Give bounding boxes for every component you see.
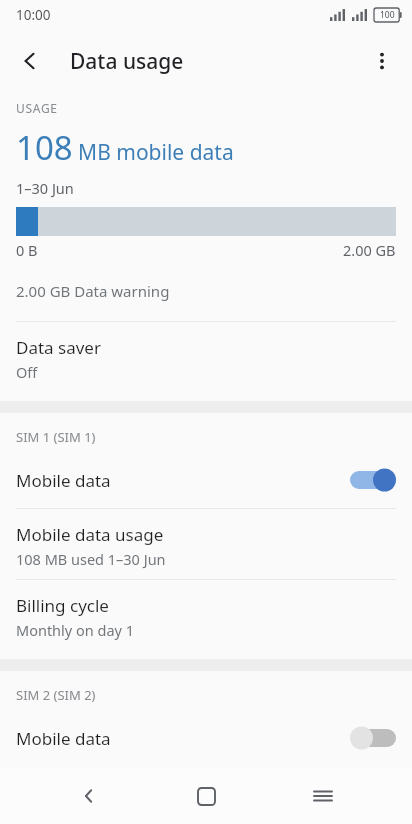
- staticText: 1–30 Jun: [16, 178, 74, 198]
- button[interactable]: Home: [178, 768, 234, 824]
- button[interactable]: Data saver: [0, 322, 412, 392]
- staticText: Mobile data: [16, 469, 350, 492]
- button[interactable]: More options: [358, 37, 406, 85]
- button[interactable]: Billing cycle: [0, 580, 412, 650]
- staticText: 108 MB used 1–30 Jun: [16, 549, 166, 569]
- staticText: Data saver: [16, 336, 101, 359]
- button[interactable]: Recent apps: [295, 768, 351, 824]
- staticText: Mobile data usage: [16, 523, 164, 546]
- staticText: 0 B: [16, 240, 38, 260]
- staticText: SIM 2 (SIM 2): [16, 686, 96, 704]
- button[interactable]: Mobile data: [0, 710, 412, 766]
- button[interactable]: Back: [6, 37, 54, 85]
- staticText: 2.00 GB: [343, 240, 396, 260]
- staticText: 2.00 GB Data warning: [16, 281, 170, 301]
- staticText: Monthly on day 1: [16, 620, 135, 640]
- staticText: SIM 1 (SIM 1): [16, 428, 96, 446]
- staticText: Mobile data: [16, 727, 350, 750]
- button[interactable]: Mobile data usage: [0, 509, 412, 579]
- staticText: USAGE: [16, 100, 58, 116]
- staticText: Data usage: [70, 47, 184, 76]
- button[interactable]: Mobile data: [0, 452, 412, 508]
- staticText: 10:00: [16, 6, 51, 24]
- staticText: 100: [380, 9, 395, 21]
- button[interactable]: Back: [61, 768, 117, 824]
- staticText: 108 MB mobile data: [16, 125, 234, 170]
- staticText: Billing cycle: [16, 594, 109, 617]
- staticText: Off: [16, 362, 38, 382]
